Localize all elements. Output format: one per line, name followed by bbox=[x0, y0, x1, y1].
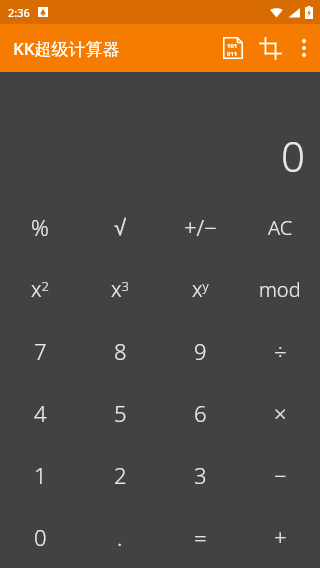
button[interactable]: . bbox=[80, 506, 160, 568]
button[interactable]: 2 bbox=[80, 444, 160, 506]
button[interactable]: mod bbox=[240, 258, 320, 320]
button[interactable]: 0 bbox=[0, 506, 80, 568]
staticText: × bbox=[274, 398, 287, 428]
staticText: mod bbox=[259, 276, 301, 303]
button[interactable]: Binary converter bbox=[214, 24, 252, 72]
staticText: = bbox=[194, 522, 207, 552]
staticText: % bbox=[31, 212, 49, 242]
staticText: 9 bbox=[194, 336, 207, 366]
staticText: ÷ bbox=[274, 336, 287, 366]
button[interactable]: 4 bbox=[0, 382, 80, 444]
staticText: 011 bbox=[227, 50, 238, 58]
button[interactable]: +/− bbox=[160, 196, 240, 258]
staticText: 7 bbox=[34, 336, 47, 366]
staticText: 3 bbox=[194, 460, 207, 490]
button[interactable]: 9 bbox=[160, 320, 240, 382]
staticText: xy bbox=[192, 275, 209, 304]
staticText: 0 bbox=[34, 522, 47, 552]
staticText: +/− bbox=[184, 212, 217, 242]
button[interactable]: 7 bbox=[0, 320, 80, 382]
button[interactable]: x3 bbox=[80, 258, 160, 320]
staticText: + bbox=[274, 522, 287, 552]
button[interactable]: = bbox=[160, 506, 240, 568]
button[interactable]: AC bbox=[240, 196, 320, 258]
button[interactable]: 1 bbox=[0, 444, 80, 506]
staticText: . bbox=[117, 522, 123, 552]
staticText: √ bbox=[114, 215, 127, 240]
staticText: 2:36 bbox=[8, 5, 30, 20]
button[interactable]: xy bbox=[160, 258, 240, 320]
button[interactable]: − bbox=[240, 444, 320, 506]
staticText: 2 bbox=[114, 460, 127, 490]
button[interactable]: % bbox=[0, 196, 80, 258]
staticText: 4 bbox=[34, 398, 47, 428]
staticText: 5 bbox=[114, 398, 127, 428]
staticText: 101 bbox=[227, 42, 238, 50]
staticText: − bbox=[274, 460, 287, 490]
staticText: x2 bbox=[31, 275, 50, 304]
button[interactable]: More options bbox=[288, 24, 320, 72]
button[interactable]: 3 bbox=[160, 444, 240, 506]
button[interactable]: Crop bbox=[252, 24, 288, 72]
button[interactable]: 6 bbox=[160, 382, 240, 444]
staticText: KK超级计算器 bbox=[13, 37, 120, 60]
button[interactable]: + bbox=[240, 506, 320, 568]
button[interactable]: × bbox=[240, 382, 320, 444]
button[interactable]: 8 bbox=[80, 320, 160, 382]
staticText: 6 bbox=[194, 398, 207, 428]
staticText: 8 bbox=[114, 336, 127, 366]
button[interactable]: √ bbox=[80, 196, 160, 258]
staticText: AC bbox=[268, 214, 293, 241]
button[interactable]: x2 bbox=[0, 258, 80, 320]
staticText: 1 bbox=[34, 460, 47, 490]
button[interactable]: ÷ bbox=[240, 320, 320, 382]
button[interactable]: 5 bbox=[80, 382, 160, 444]
staticText: x3 bbox=[111, 275, 130, 304]
staticText: 0 bbox=[281, 127, 305, 184]
